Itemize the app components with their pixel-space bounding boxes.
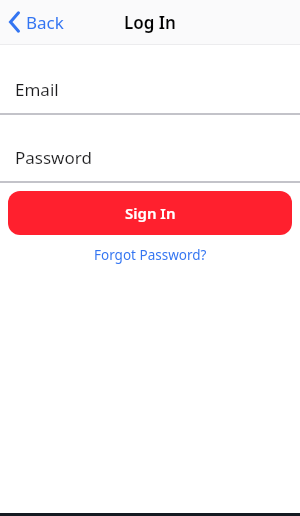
staticText: Forgot Password? xyxy=(94,246,207,264)
staticText: Password xyxy=(15,146,92,169)
button[interactable]: Sign In xyxy=(8,191,292,235)
button[interactable]: Forgot Password? xyxy=(86,244,215,266)
staticText: Log In xyxy=(124,11,176,34)
staticText: Email xyxy=(15,78,59,101)
button[interactable]: Back xyxy=(8,0,64,44)
button[interactable]: Password xyxy=(0,122,300,182)
button[interactable]: Email xyxy=(0,54,300,114)
staticText: Back xyxy=(26,11,64,34)
staticText: Sign In xyxy=(125,203,176,223)
